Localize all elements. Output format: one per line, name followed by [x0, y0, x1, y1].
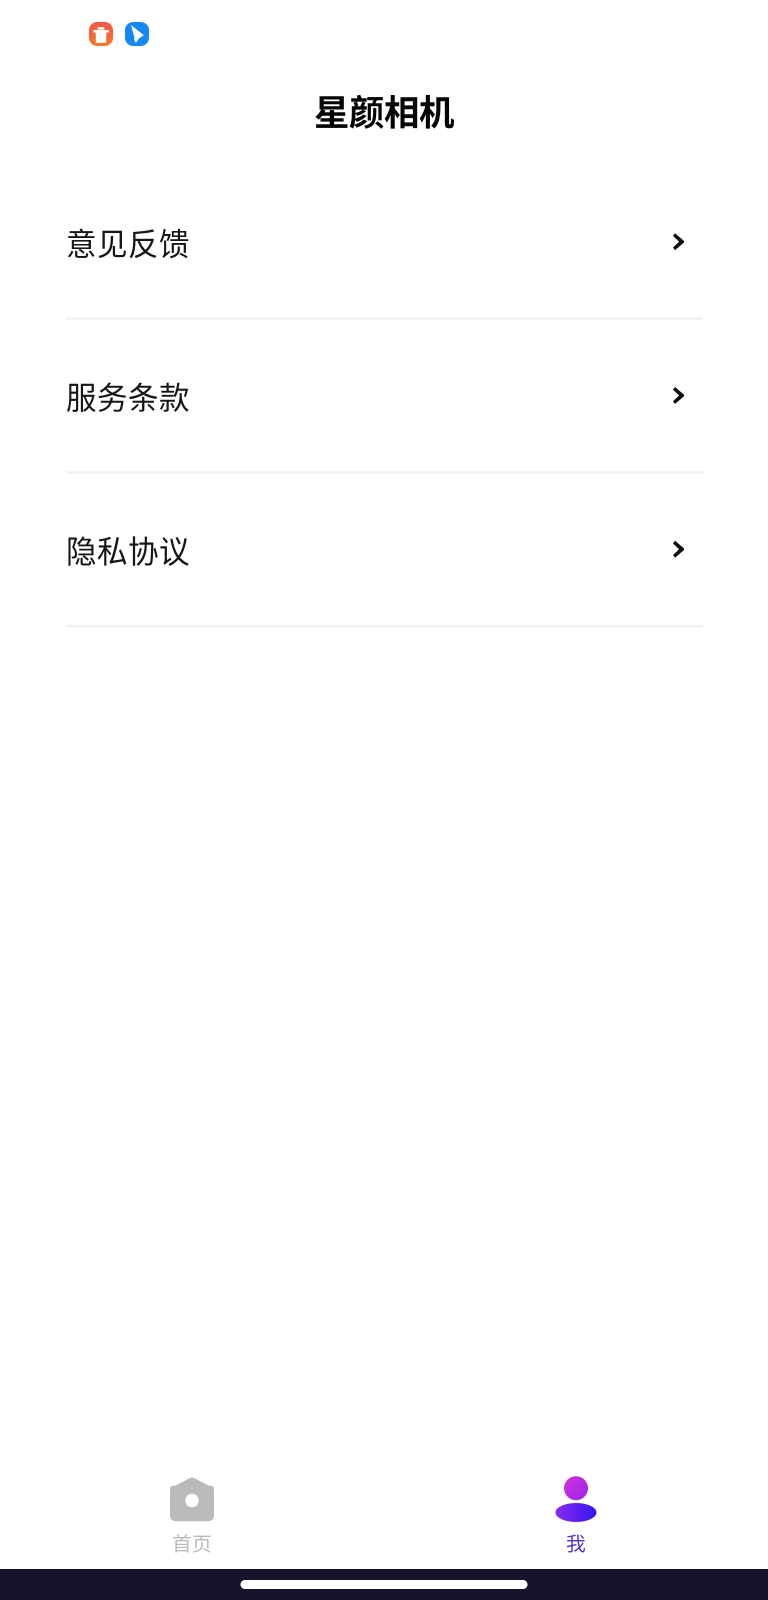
staticText: 服务条款	[66, 373, 190, 418]
button[interactable]: 首页	[0, 1469, 384, 1569]
staticText: 星颜相机	[314, 84, 454, 135]
button[interactable]: 隐私协议	[0, 472, 768, 626]
staticText: 意见反馈	[66, 220, 190, 264]
button[interactable]: 我	[384, 1469, 768, 1569]
staticText: 我	[566, 1528, 586, 1557]
button[interactable]: 服务条款	[0, 319, 768, 472]
button[interactable]: 意见反馈	[0, 165, 768, 319]
staticText: 首页	[172, 1528, 212, 1557]
staticText: 隐私协议	[66, 527, 190, 571]
